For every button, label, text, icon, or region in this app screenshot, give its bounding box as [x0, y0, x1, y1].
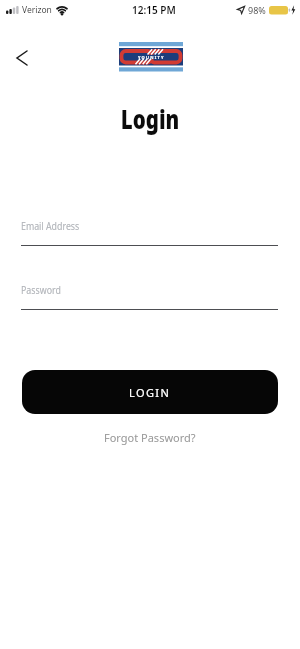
button[interactable]: Password — [21, 282, 278, 310]
staticText: Forgot Password? — [104, 430, 196, 445]
staticText: Login — [36, 100, 264, 137]
button[interactable]: Email Address — [21, 218, 278, 246]
button[interactable]: Forgot Password? — [104, 430, 196, 445]
staticText: Email Address — [21, 219, 80, 233]
staticText: 98% — [248, 4, 266, 16]
staticText: LOGIN — [129, 385, 171, 400]
button[interactable] — [8, 44, 36, 72]
staticText: Password — [21, 283, 61, 297]
staticText: 12:15 PM — [132, 3, 176, 17]
staticText: Verizon — [22, 4, 52, 16]
staticText: YOUNITY — [138, 55, 165, 60]
button[interactable]: LOGIN — [22, 370, 278, 414]
